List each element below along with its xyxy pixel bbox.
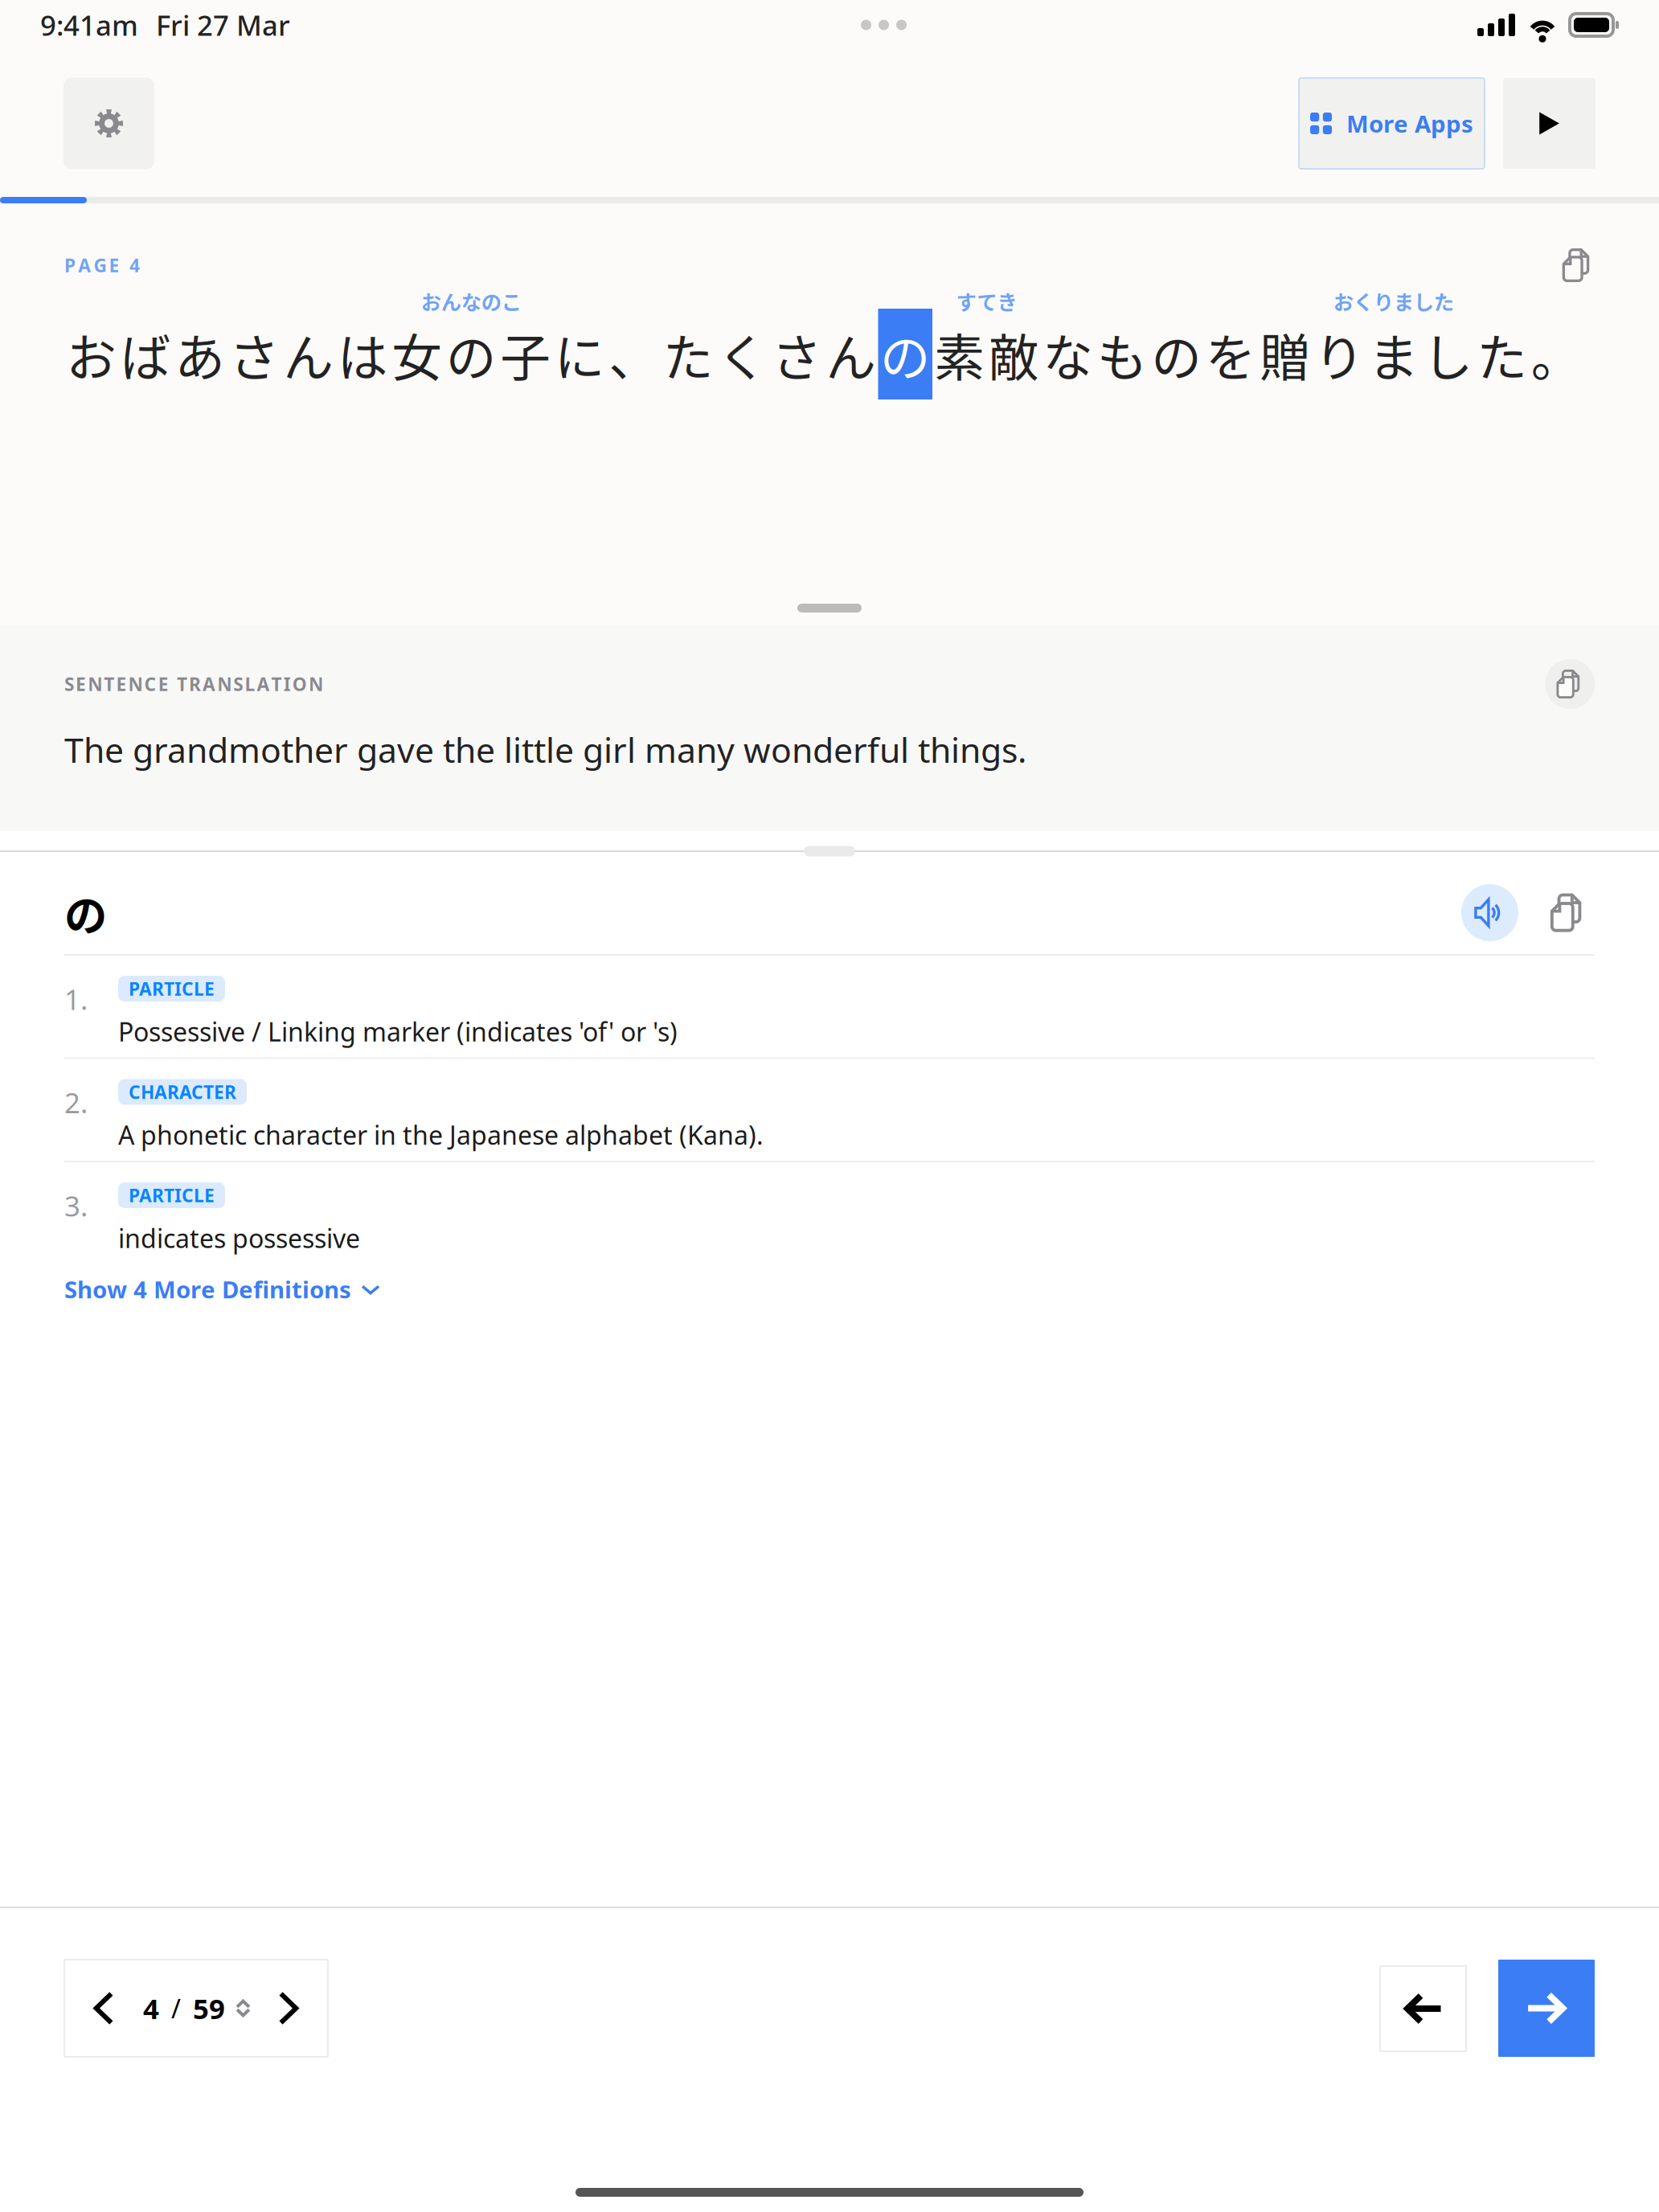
staticText: は — [337, 318, 388, 390]
staticText: おんなのこ — [421, 286, 521, 316]
staticText: E — [116, 672, 127, 696]
staticText: PARTICLE — [129, 977, 215, 1001]
staticText: E — [109, 253, 119, 277]
staticText: T — [104, 672, 114, 696]
staticText: し — [1423, 318, 1473, 390]
staticText: T — [271, 672, 282, 696]
staticText: の — [880, 318, 931, 390]
staticText: おくりました — [1333, 286, 1454, 316]
staticText: さ — [229, 318, 280, 390]
staticText: り — [1314, 318, 1365, 390]
staticText: な — [1043, 318, 1093, 390]
staticText: A — [257, 672, 270, 696]
staticText: 3. — [64, 1187, 88, 1224]
staticText: 敵 — [988, 318, 1039, 390]
button[interactable]: Copy translation — [1545, 659, 1595, 709]
staticText: 4 — [129, 253, 140, 277]
staticText: ば — [120, 318, 171, 390]
staticText: の — [1151, 318, 1202, 390]
button[interactable]: Back — [1380, 1966, 1466, 2051]
staticText: あ — [175, 318, 225, 390]
staticText: た — [663, 318, 714, 390]
staticText: 素 — [934, 318, 985, 390]
staticText: I — [283, 672, 291, 696]
button[interactable]: Play — [1503, 78, 1596, 169]
staticText: く — [717, 318, 768, 390]
staticText: に — [554, 318, 605, 390]
staticText: P — [64, 253, 76, 277]
staticText: / — [171, 1991, 181, 2025]
staticText: の — [446, 318, 497, 390]
staticText: 2. — [64, 1084, 88, 1121]
staticText: indicates possessive — [118, 1221, 360, 1255]
staticText: L — [245, 672, 255, 696]
staticText: G — [94, 253, 106, 277]
button[interactable]: Previous page — [64, 1960, 143, 2057]
staticText: も — [1097, 318, 1148, 390]
staticText: お — [66, 318, 117, 390]
staticText: The grandmother gave the little girl man… — [64, 727, 1026, 772]
staticText: A — [203, 672, 215, 696]
staticText: PARTICLE — [129, 1183, 215, 1207]
staticText: を — [1206, 318, 1256, 390]
button[interactable]: More Apps — [1299, 78, 1485, 169]
staticText: E — [76, 672, 86, 696]
staticText: T — [177, 672, 187, 696]
button[interactable]: Copy word — [1549, 893, 1587, 932]
staticText: N — [217, 672, 232, 696]
staticText: S — [64, 672, 74, 696]
staticText: O — [292, 672, 307, 696]
button[interactable]: Play pronunciation — [1461, 884, 1518, 941]
staticText: R — [189, 672, 201, 696]
staticText: S — [233, 672, 243, 696]
staticText: ま — [1368, 318, 1419, 390]
staticText: 4 — [143, 1990, 159, 2027]
staticText: 贈 — [1260, 318, 1310, 390]
staticText: さ — [771, 318, 822, 390]
staticText: 子 — [500, 318, 551, 390]
staticText: N — [128, 672, 143, 696]
staticText: ん — [826, 318, 876, 390]
staticText: More Apps — [1346, 108, 1473, 139]
button[interactable]: Copy sentence — [1561, 248, 1595, 282]
staticText: N — [88, 672, 102, 696]
staticText: CHARACTER — [129, 1080, 236, 1104]
staticText: 59 — [193, 1990, 225, 2027]
staticText: ん — [283, 318, 334, 390]
button[interactable]: Next page — [249, 1960, 328, 2057]
staticText: A — [78, 253, 91, 277]
staticText: Fri 27 Mar — [156, 6, 290, 43]
button[interactable]: Settings — [63, 78, 154, 169]
staticText: Possessive / Linking marker (indicates '… — [118, 1014, 678, 1049]
button[interactable]: Forward — [1498, 1960, 1595, 2057]
staticText: A phonetic character in the Japanese alp… — [118, 1118, 764, 1152]
staticText: 女 — [392, 318, 442, 390]
staticText: Show 4 More Definitions — [64, 1274, 351, 1305]
button[interactable]: Show 4 More Definitions — [64, 1264, 379, 1324]
staticText: 、 — [609, 318, 659, 390]
staticText: た — [1477, 318, 1527, 390]
staticText: N — [309, 672, 323, 696]
staticText: すてき — [956, 286, 1017, 316]
staticText: の — [64, 882, 107, 944]
staticText: 1. — [64, 981, 88, 1018]
staticText: E — [158, 672, 169, 696]
staticText: C — [144, 672, 156, 696]
staticText: 9:41am — [40, 6, 138, 43]
staticText: 。 — [1531, 318, 1582, 390]
